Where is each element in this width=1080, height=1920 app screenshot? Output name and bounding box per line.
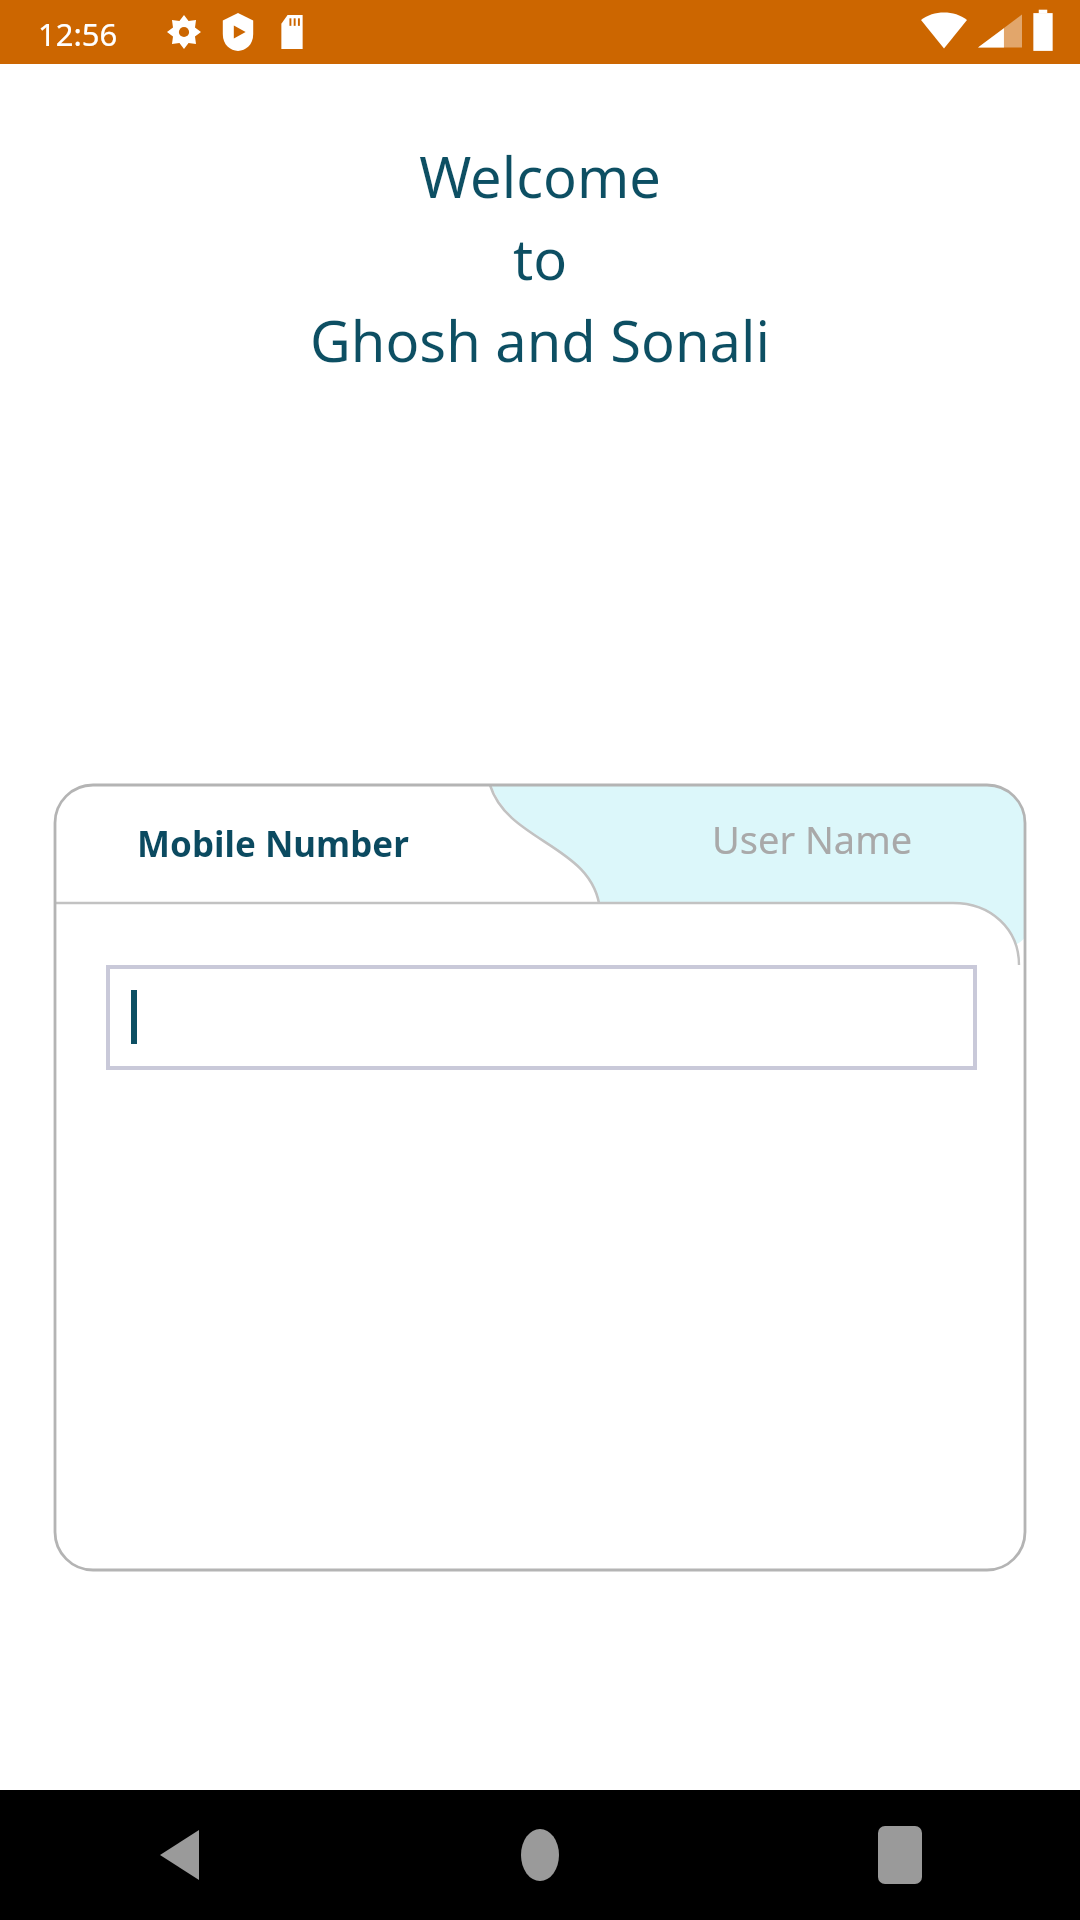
button[interactable]: Back — [0, 1790, 360, 1920]
button[interactable]: Recent apps — [720, 1790, 1080, 1920]
button[interactable]: User Name — [600, 785, 1025, 948]
staticText: Ghosh and Sonali — [0, 302, 1080, 378]
staticText: 12:56 — [38, 13, 118, 55]
button[interactable]: Mobile Number — [55, 785, 490, 903]
staticText: to — [0, 220, 1080, 296]
staticText: Welcome — [0, 138, 1080, 214]
staticText: User Name — [712, 813, 913, 865]
staticText: Mobile Number — [137, 820, 409, 868]
button[interactable]: Home — [360, 1790, 720, 1920]
button[interactable]: Mobile number input — [108, 967, 975, 1068]
